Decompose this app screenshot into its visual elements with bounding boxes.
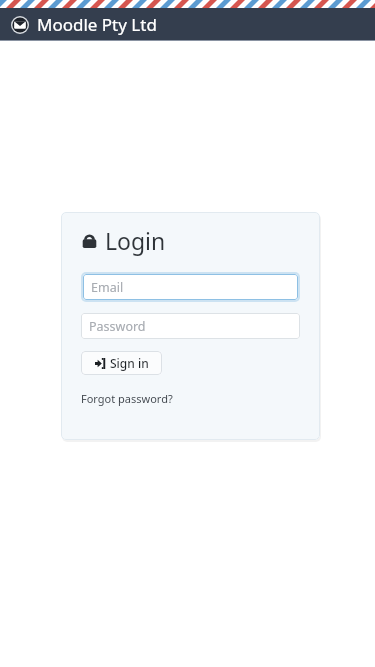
button[interactable]: Forgot password? — [81, 391, 173, 406]
button[interactable]: Sign in — [81, 351, 162, 375]
staticText: Login — [105, 225, 166, 256]
other: Moodle logo — [11, 16, 29, 34]
staticText: Sign in — [110, 355, 149, 371]
staticText: Moodle Pty Ltd — [37, 13, 157, 36]
staticText: Email — [91, 279, 124, 296]
other: Sign in — [95, 358, 106, 369]
staticText: Password — [89, 318, 146, 335]
button[interactable]: Email — [81, 272, 300, 302]
button[interactable]: Moodle logo — [11, 13, 375, 36]
button[interactable]: Password — [81, 313, 300, 339]
